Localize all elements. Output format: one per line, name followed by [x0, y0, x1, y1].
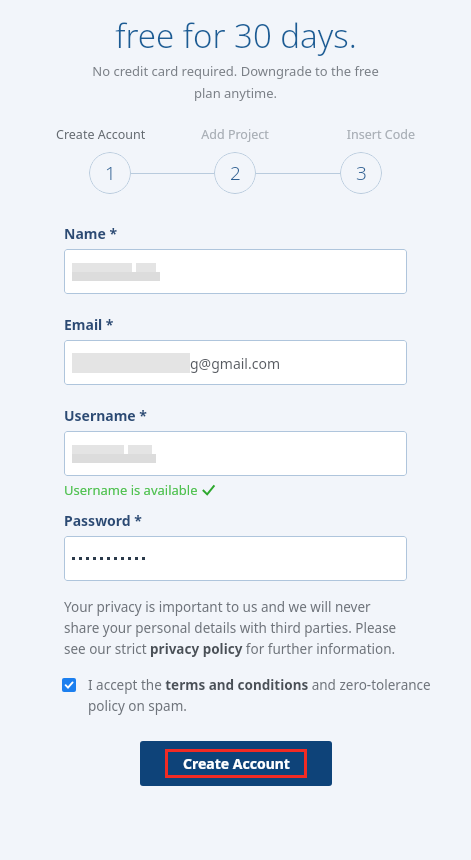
staticText: g@gmail.com [190, 354, 281, 373]
staticText: 3 [356, 160, 367, 186]
staticText: No credit card required. Downgrade to th… [46, 62, 425, 102]
staticText: I accept the terms and conditions and ze… [88, 676, 431, 715]
staticText: Create Account [183, 754, 290, 773]
staticText: 2 [230, 160, 241, 186]
staticText: free for 30 days. [115, 13, 357, 58]
staticText: Password * [64, 511, 142, 530]
button[interactable]: Step 2 [214, 152, 256, 194]
button[interactable]: Step 3 [340, 152, 382, 194]
staticText: Email * [64, 315, 114, 334]
staticText: Your privacy is important to us and we w… [64, 598, 407, 658]
staticText: 1 [105, 160, 116, 186]
button[interactable]: Create Account [140, 741, 332, 786]
button[interactable]: Step 1 [89, 152, 131, 194]
staticText: Username is available [64, 481, 198, 499]
staticText: Add Project [175, 126, 295, 143]
button[interactable]: g@gmail.com [64, 340, 407, 385]
staticText: Insert Code [295, 126, 415, 143]
button[interactable] [64, 249, 407, 294]
button[interactable] [64, 431, 407, 476]
staticText: Username * [64, 406, 147, 425]
staticText: Name * [64, 224, 118, 243]
button[interactable] [64, 536, 407, 581]
button[interactable]: I accept the terms and conditions and ze… [62, 676, 431, 715]
staticText: Create Account [56, 126, 175, 143]
